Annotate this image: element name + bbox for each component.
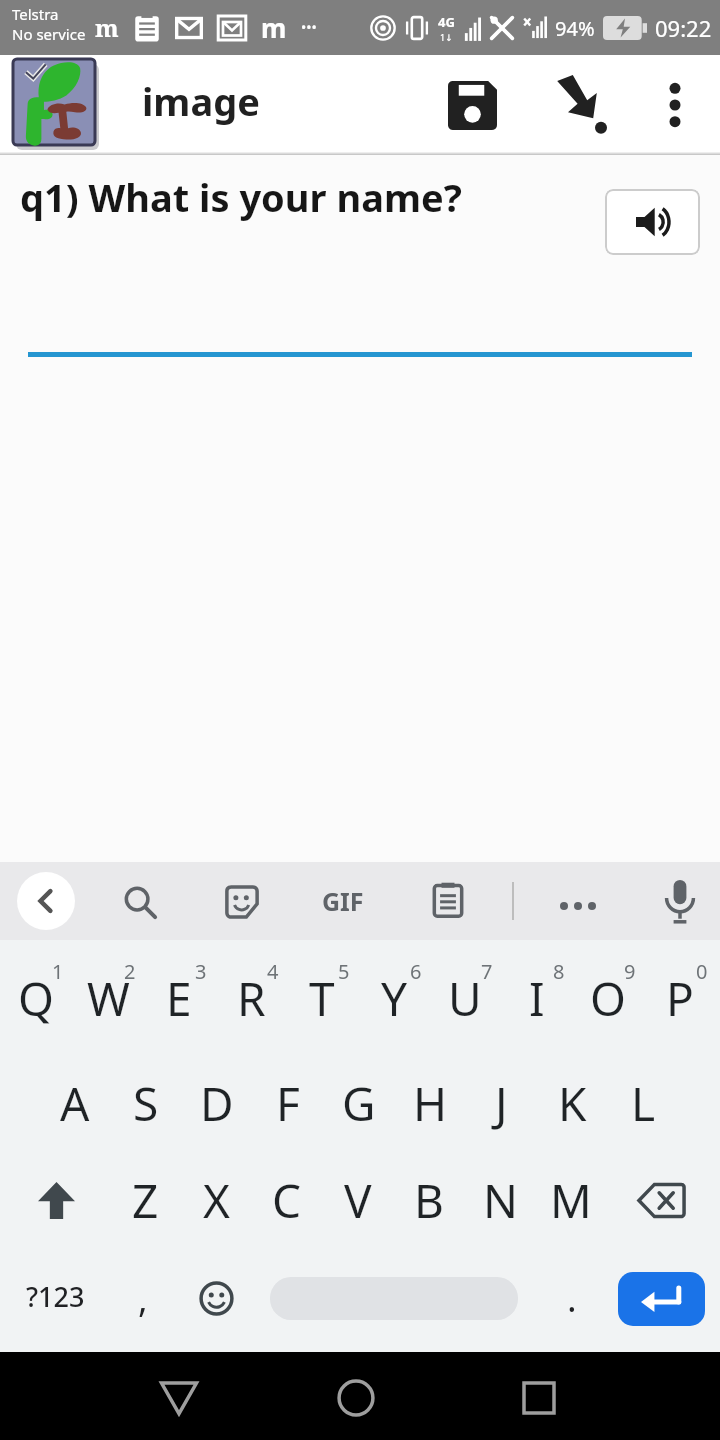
staticText: O [590,967,626,1030]
staticText: V [344,1169,372,1232]
button[interactable]: GIF [322,884,364,918]
button[interactable] [13,59,99,150]
staticText: H [413,1072,448,1135]
button[interactable]: R [218,962,284,1034]
button[interactable] [160,1381,198,1415]
staticText: 09:22 [655,13,712,43]
button[interactable]: X [183,1164,249,1236]
button[interactable]: ?123 [26,1278,85,1315]
staticText: M [550,1169,592,1232]
button[interactable]: I [504,962,570,1034]
staticText: 6 [410,958,422,985]
staticText: 0 [696,958,708,985]
button[interactable] [338,1380,374,1416]
staticText: 1 [52,958,64,985]
staticText: R [237,967,266,1030]
button[interactable] [664,880,696,924]
button[interactable] [448,81,497,130]
button[interactable] [550,75,610,135]
staticText: U [448,967,482,1030]
staticText: ••• [301,18,317,37]
button[interactable] [17,872,75,930]
staticText: J [495,1072,508,1135]
button[interactable]: T [289,962,355,1034]
staticText: image [142,75,260,127]
button[interactable] [38,1182,75,1219]
staticText: 8 [553,958,565,985]
staticText: T [309,967,335,1030]
staticText: A [60,1072,90,1135]
button[interactable]: M [538,1164,604,1236]
staticText: Y [381,967,408,1030]
staticText: K [558,1072,587,1135]
staticText: Telstra [12,4,59,24]
staticText: E [166,967,192,1030]
button[interactable] [658,83,692,127]
staticText: P [666,967,694,1030]
button[interactable] [522,1381,556,1415]
staticText: Z [132,1169,159,1232]
staticText: 2 [124,958,136,985]
button[interactable]: . [567,1274,577,1323]
staticText: 5 [338,958,350,985]
button[interactable]: Q [3,962,69,1034]
staticText: 4 [267,958,279,985]
staticText: W [87,967,130,1030]
staticText: No service [12,24,86,44]
staticText: m [261,10,287,45]
staticText: D [200,1072,234,1135]
staticText: G [342,1072,376,1135]
button[interactable]: E [146,962,212,1034]
staticText: 9 [624,958,636,985]
staticText: C [272,1169,302,1232]
button[interactable] [638,1183,685,1218]
button[interactable] [199,1281,234,1316]
button[interactable]: Z [112,1164,178,1236]
button[interactable]: F [255,1067,321,1139]
staticText: 4G [438,13,455,31]
button[interactable]: Y [361,962,427,1034]
button[interactable]: G [326,1067,392,1139]
button[interactable]: , [138,1274,148,1323]
staticText: N [483,1169,518,1232]
staticText: I [529,967,545,1030]
button[interactable]: O [575,962,641,1034]
button[interactable]: L [610,1067,676,1139]
staticText: X [203,1169,230,1232]
button[interactable] [224,884,260,920]
staticText: S [133,1072,159,1135]
button[interactable] [270,1277,518,1320]
button[interactable] [605,189,700,255]
button[interactable]: J [468,1067,534,1139]
button[interactable]: W [75,962,141,1034]
button[interactable] [122,884,158,920]
button[interactable]: U [432,962,498,1034]
button[interactable]: S [113,1067,179,1139]
button[interactable] [430,882,466,918]
staticText: 94% [555,15,595,42]
staticText: 7 [481,958,493,985]
button[interactable]: B [396,1164,462,1236]
button[interactable] [558,884,598,924]
staticText: B [414,1169,444,1232]
button[interactable]: A [42,1067,108,1139]
staticText: m [95,11,119,44]
staticText: L [631,1072,656,1135]
staticText: 1↓ [440,31,453,43]
button[interactable]: P [647,962,713,1034]
button[interactable]: H [397,1067,463,1139]
staticText: q1) What is your name? [20,171,462,223]
staticText: F [276,1072,300,1135]
button[interactable] [618,1272,705,1326]
staticText: 3 [195,958,207,985]
button[interactable]: N [467,1164,533,1236]
button[interactable]: V [325,1164,391,1236]
button[interactable]: D [184,1067,250,1139]
button[interactable]: K [539,1067,605,1139]
button[interactable]: C [254,1164,320,1236]
staticText: Q [18,967,54,1030]
